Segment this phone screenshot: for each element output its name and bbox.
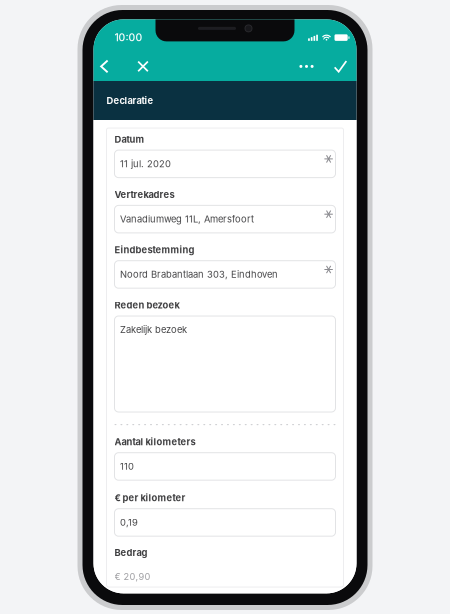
staticText: Datum: [114, 134, 144, 145]
staticText: 10:00: [114, 31, 142, 44]
staticText: Vertrekadres: [114, 189, 174, 200]
staticText: Zakelijk bezoek: [120, 324, 187, 335]
staticText: Vanadiumweg 11L, Amersfoort: [120, 213, 254, 225]
staticText: Declaratie: [106, 95, 153, 106]
staticText: Noord Brabantlaan 303, Eindhoven: [120, 269, 278, 280]
staticText: € per kilometer: [114, 492, 185, 504]
staticText: Reden bezoek: [114, 300, 179, 311]
button[interactable]: Close: [132, 52, 154, 80]
staticText: 110: [120, 461, 134, 472]
button[interactable]: Back: [93, 52, 115, 80]
staticText: Aantal kilometers: [114, 436, 195, 448]
staticText: 0,19: [120, 517, 138, 528]
button[interactable]: Save: [327, 52, 353, 80]
staticText: Bedrag: [114, 547, 147, 558]
staticText: 11 jul. 2020: [120, 158, 171, 169]
staticText: Eindbestemming: [114, 244, 194, 256]
staticText: € 20,90: [114, 571, 150, 582]
button[interactable]: More options: [293, 52, 319, 80]
